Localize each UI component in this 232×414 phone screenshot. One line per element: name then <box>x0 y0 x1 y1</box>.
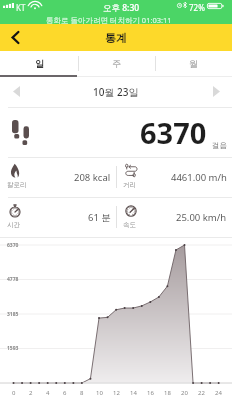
button[interactable]: 속도 <box>116 197 232 237</box>
staticText: 통화로 돌아가려면 터치하기 01:03:11 <box>46 15 172 25</box>
staticText: 24 <box>215 389 222 397</box>
staticText: 6 <box>63 389 67 397</box>
staticText: 6370 <box>140 113 207 152</box>
staticText: 4461.00 m/h <box>171 171 227 184</box>
staticText: 6370 <box>7 242 19 249</box>
staticText: 일 <box>35 58 44 69</box>
button[interactable]: 월 <box>155 51 232 77</box>
staticText: 4 <box>46 389 50 397</box>
button[interactable]: 주 <box>78 51 155 77</box>
staticText: 2 <box>29 389 33 397</box>
staticText: 통계 <box>105 31 127 45</box>
staticText: 20 <box>181 389 188 397</box>
staticText: 1593 <box>7 345 19 352</box>
staticText: 10월 23일 <box>93 85 139 99</box>
staticText: 10 <box>96 389 103 397</box>
staticText: 18 <box>164 389 171 397</box>
staticText: 걸음 <box>212 141 227 150</box>
staticText: 오후 8:30 <box>103 2 140 14</box>
staticText: 4778 <box>7 276 19 283</box>
button[interactable]: Next day <box>200 77 232 106</box>
staticText: 8 <box>80 389 84 397</box>
staticText: 칼로리 <box>7 181 27 189</box>
staticText: 3185 <box>7 311 19 318</box>
staticText: 208 kcal <box>74 171 111 184</box>
staticText: 25.00 km/h <box>176 211 227 224</box>
staticText: 시간 <box>7 221 20 229</box>
button[interactable]: 칼로리 <box>0 157 116 197</box>
button[interactable]: Previous day <box>0 77 32 106</box>
button[interactable]: 거리 <box>116 157 232 197</box>
button[interactable]: 일 <box>0 51 78 77</box>
staticText: 16 <box>147 389 154 397</box>
button[interactable]: Back <box>0 24 30 51</box>
staticText: 22 <box>198 389 205 397</box>
staticText: 거리 <box>123 181 136 189</box>
staticText: 12 <box>113 389 120 397</box>
staticText: 속도 <box>123 221 136 229</box>
staticText: 14 <box>130 389 137 397</box>
staticText: 주 <box>112 58 121 69</box>
staticText: KT <box>16 2 26 13</box>
staticText: 72% <box>189 2 205 13</box>
staticText: 월 <box>189 58 198 69</box>
staticText: 0 <box>12 389 16 397</box>
button[interactable]: 시간 <box>0 197 116 237</box>
staticText: 61 분 <box>88 211 111 224</box>
